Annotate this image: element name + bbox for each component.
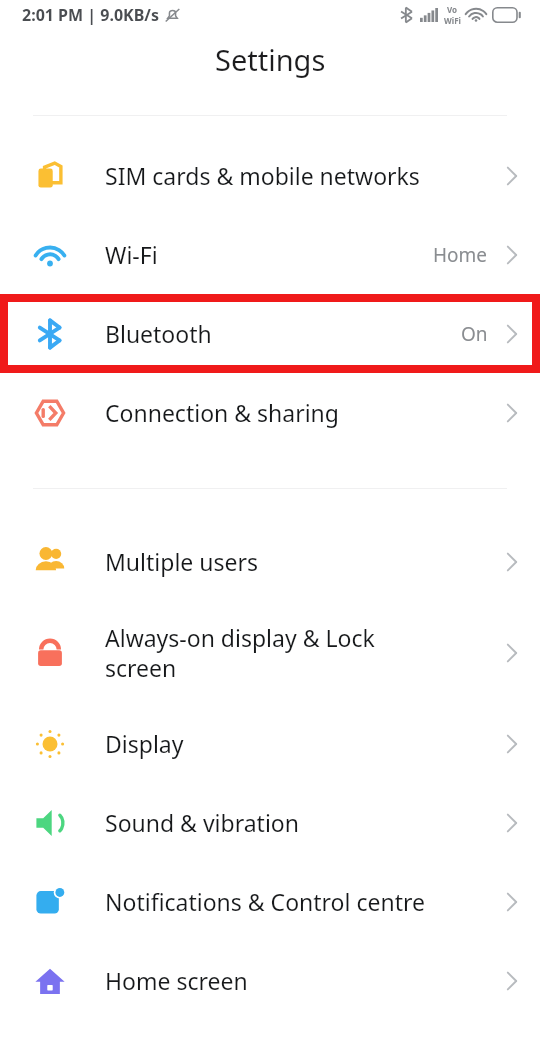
- staticText: WiFi: [444, 15, 461, 26]
- staticText: Always-on display & Lock screen: [105, 622, 506, 683]
- staticText: Connection & sharing: [105, 397, 506, 428]
- button[interactable]: Multiple users: [0, 522, 540, 601]
- staticText: 2:01 PM | 9.0KB/s: [22, 4, 160, 26]
- staticText: Notifications & Control centre: [105, 886, 506, 917]
- staticText: On: [461, 321, 488, 347]
- button[interactable]: Bluetooth: [8, 302, 532, 365]
- button[interactable]: Home screen: [0, 941, 540, 1020]
- button[interactable]: Wi-Fi: [0, 215, 540, 294]
- staticText: Multiple users: [105, 546, 506, 577]
- button[interactable]: Display: [0, 704, 540, 783]
- staticText: Home screen: [105, 965, 506, 996]
- staticText: Bluetooth: [105, 318, 461, 349]
- staticText: Home: [433, 242, 488, 268]
- button[interactable]: Connection & sharing: [0, 373, 540, 452]
- staticText: Sound & vibration: [105, 807, 506, 838]
- staticText: SIM cards & mobile networks: [105, 160, 506, 191]
- button[interactable]: Sound & vibration: [0, 783, 540, 862]
- button[interactable]: Always-on display & Lock screen: [0, 601, 540, 704]
- staticText: Settings: [215, 40, 326, 79]
- staticText: Display: [105, 728, 506, 759]
- button[interactable]: Notifications & Control centre: [0, 862, 540, 941]
- staticText: Wi-Fi: [105, 239, 433, 270]
- staticText: Vo: [447, 4, 458, 15]
- button[interactable]: SIM cards & mobile networks: [0, 136, 540, 215]
